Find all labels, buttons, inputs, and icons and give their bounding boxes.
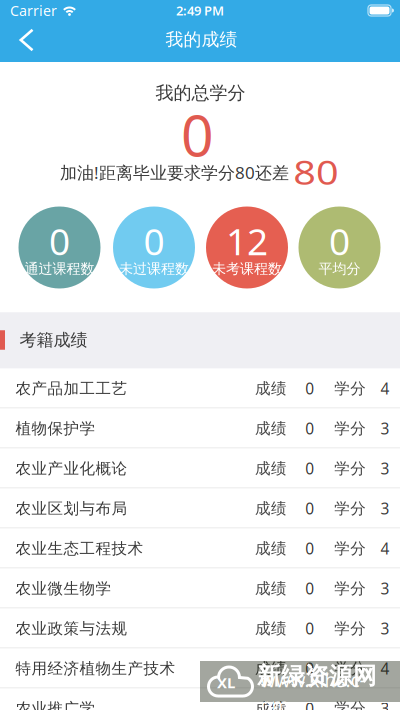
staticText: 成绩	[255, 459, 287, 478]
staticText: 我的成绩	[165, 29, 237, 50]
staticText: 0	[305, 378, 314, 399]
button[interactable]: 农业产业化概论	[0, 448, 400, 488]
button[interactable]: 农业政策与法规	[0, 608, 400, 648]
staticText: 农业产业化概论	[15, 459, 127, 478]
staticText: 2:49 PM	[176, 2, 224, 19]
staticText: XL	[217, 672, 235, 692]
staticText: 0	[305, 578, 314, 599]
button[interactable]: 农业区划与布局	[0, 488, 400, 528]
staticText: 学分	[334, 459, 366, 478]
button[interactable]: 农业推广学	[0, 688, 400, 710]
staticText: 3	[380, 618, 389, 639]
staticText: 学分	[334, 659, 366, 678]
staticText: 通过课程数	[24, 260, 94, 277]
staticText: 0	[305, 658, 314, 679]
staticText: Carrier	[10, 1, 57, 20]
staticText: 学分	[334, 419, 366, 438]
staticText: 未过课程数	[119, 260, 189, 277]
staticText: 4	[380, 378, 389, 399]
staticText: 0	[49, 216, 70, 265]
staticText: 3	[380, 418, 389, 439]
button[interactable]: 农产品加工工艺	[0, 368, 400, 408]
staticText: 4	[380, 538, 389, 559]
staticText: 成绩	[255, 539, 287, 558]
staticText: 未考课程数	[212, 260, 282, 277]
staticText: 成绩	[255, 659, 287, 678]
staticText: 学分	[334, 579, 366, 598]
staticText: 0	[181, 97, 214, 172]
staticText: 农业区划与布局	[15, 499, 127, 518]
staticText: 我的总学分	[155, 82, 245, 104]
staticText: 成绩	[255, 379, 287, 398]
staticText: 3	[380, 698, 389, 710]
staticText: 3	[380, 458, 389, 479]
staticText: 0	[305, 418, 314, 439]
button[interactable]: 植物保护学	[0, 408, 400, 448]
staticText: 3	[380, 578, 389, 599]
staticText: 0	[305, 538, 314, 559]
staticText: 考籍成绩	[19, 330, 87, 350]
staticText: 成绩	[255, 699, 287, 710]
button[interactable]: Back	[3, 19, 49, 61]
staticText: 学分	[334, 699, 366, 710]
staticText: 农业政策与法规	[15, 619, 127, 638]
staticText: 0	[305, 618, 314, 639]
button[interactable]: 农业生态工程技术	[0, 528, 400, 568]
staticText: 学分	[334, 499, 366, 518]
staticText: 平均分	[318, 260, 360, 277]
button[interactable]: 农业微生物学	[0, 568, 400, 608]
staticText: 学分	[334, 379, 366, 398]
staticText: 成绩	[255, 579, 287, 598]
staticText: 成绩	[255, 419, 287, 438]
staticText: 成绩	[255, 499, 287, 518]
staticText: 学分	[334, 539, 366, 558]
staticText: 农产品加工工艺	[15, 379, 127, 398]
staticText: 80	[297, 150, 335, 194]
staticText: 0	[143, 216, 164, 265]
staticText: 学分	[334, 619, 366, 638]
staticText: 0	[305, 458, 314, 479]
staticText: 新绿资源网	[257, 662, 377, 690]
staticText: 农业推广学	[15, 699, 95, 710]
staticText: 0	[329, 216, 350, 265]
staticText: 12	[226, 216, 268, 265]
staticText: 特用经济植物生产技术	[15, 659, 175, 678]
staticText: 0	[305, 698, 314, 710]
staticText: 植物保护学	[15, 419, 95, 438]
staticText: 农业微生物学	[15, 579, 111, 598]
staticText: 农业生态工程技术	[15, 539, 143, 558]
staticText: www.xlhs.com	[260, 667, 365, 710]
staticText: 0	[305, 498, 314, 519]
staticText: 成绩	[255, 619, 287, 638]
button[interactable]: 特用经济植物生产技术	[0, 648, 400, 688]
staticText: 加油!距离毕业要求学分80还差	[60, 161, 289, 184]
staticText: 4	[380, 658, 389, 679]
staticText: 3	[380, 498, 389, 519]
